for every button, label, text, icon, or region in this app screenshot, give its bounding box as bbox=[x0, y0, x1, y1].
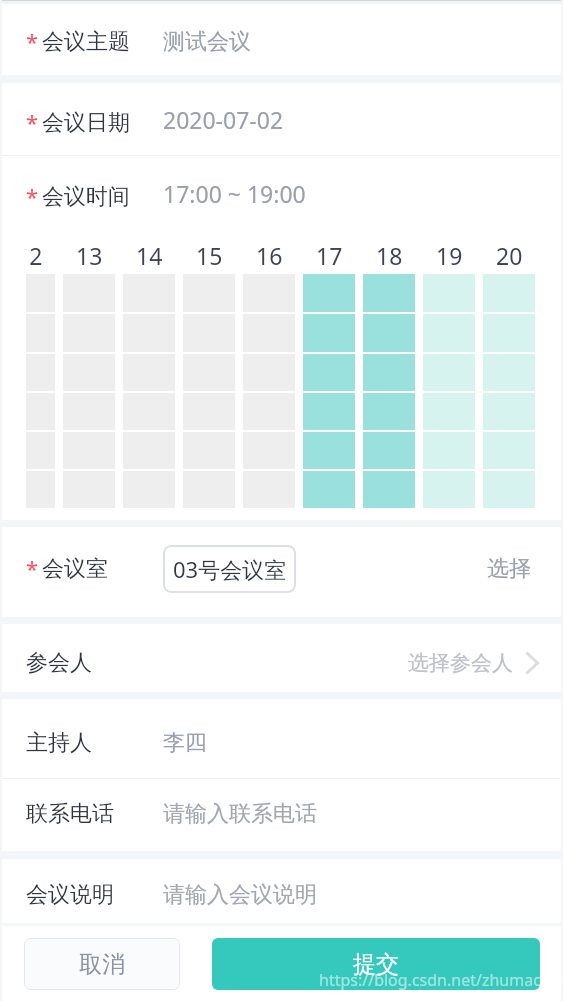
staticText: 取消 bbox=[79, 950, 125, 979]
staticText: 会议时间 bbox=[42, 183, 130, 211]
staticText: 03号会议室 bbox=[173, 554, 287, 584]
staticText: 主持人 bbox=[26, 729, 92, 757]
button[interactable]: 会议说明 bbox=[0, 859, 563, 923]
staticText: 测试会议 bbox=[163, 28, 251, 56]
staticText: 请输入联系电话 bbox=[163, 800, 317, 828]
staticText: 会议主题 bbox=[42, 28, 130, 56]
staticText: 会议日期 bbox=[42, 109, 130, 137]
staticText: 选择参会人 bbox=[408, 650, 513, 676]
button[interactable]: * bbox=[0, 0, 563, 75]
staticText: * bbox=[26, 553, 39, 583]
button[interactable]: 联系电话 bbox=[0, 779, 563, 851]
staticText: 12 bbox=[26, 240, 43, 270]
staticText: * bbox=[26, 26, 39, 56]
button[interactable]: 主持人 bbox=[0, 699, 563, 778]
button[interactable]: * bbox=[0, 83, 563, 155]
staticText: 请输入会议说明 bbox=[163, 881, 317, 909]
staticText: 联系电话 bbox=[26, 800, 114, 828]
button[interactable]: * bbox=[0, 156, 563, 230]
staticText: * bbox=[26, 181, 39, 211]
button[interactable]: 提交 bbox=[212, 938, 540, 990]
staticText: 13 bbox=[76, 240, 103, 270]
staticText: 会议说明 bbox=[26, 881, 114, 909]
staticText: 18 bbox=[376, 240, 403, 270]
staticText: 15 bbox=[196, 240, 223, 270]
button[interactable]: 参会人 bbox=[0, 624, 563, 692]
other: Select attendees bbox=[526, 652, 539, 674]
staticText: 14 bbox=[136, 240, 163, 270]
staticText: 2020-07-02 bbox=[163, 104, 284, 135]
staticText: 17:00 ~ 19:00 bbox=[163, 178, 306, 209]
staticText: 会议室 bbox=[42, 555, 108, 583]
staticText: 16 bbox=[256, 240, 283, 270]
staticText: 李四 bbox=[163, 729, 207, 757]
staticText: 17 bbox=[316, 240, 343, 270]
button[interactable]: 03号会议室 bbox=[163, 545, 296, 593]
button[interactable]: 选择 bbox=[477, 547, 541, 591]
staticText: 选择 bbox=[487, 555, 531, 583]
staticText: 19 bbox=[436, 240, 463, 270]
button[interactable]: 取消 bbox=[24, 938, 180, 990]
staticText: 参会人 bbox=[26, 649, 92, 677]
staticText: * bbox=[26, 107, 39, 137]
staticText: https://blog.csdn.net/zhumaohua bbox=[319, 969, 563, 991]
staticText: 20 bbox=[496, 240, 523, 270]
staticText: 提交 bbox=[353, 950, 399, 979]
